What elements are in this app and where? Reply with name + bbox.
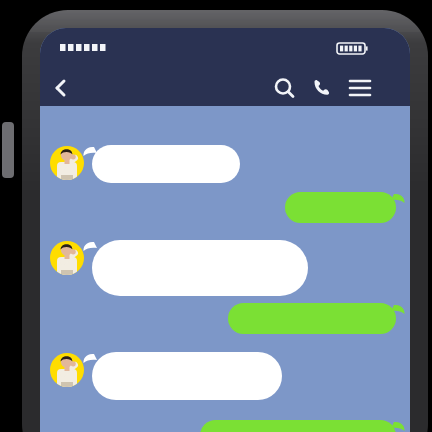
button[interactable]: Search xyxy=(265,70,301,106)
button[interactable]: Menu xyxy=(341,70,377,106)
button[interactable]: Call xyxy=(303,70,339,106)
button[interactable]: Back xyxy=(44,70,80,106)
